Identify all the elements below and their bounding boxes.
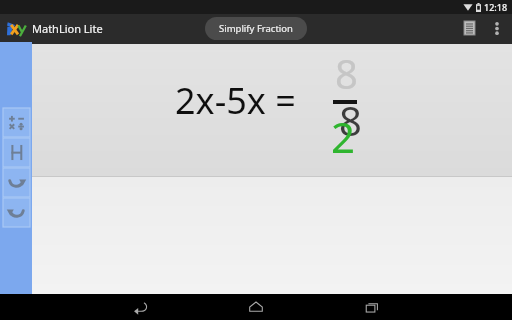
staticText: 2x-5x =	[175, 76, 296, 125]
button[interactable]: MathLion Lite	[7, 20, 103, 36]
button[interactable]: History	[454, 14, 484, 42]
staticText: Simplify Fraction	[219, 22, 293, 35]
button[interactable]: 8	[32, 44, 512, 176]
button[interactable]: Simplify Fraction	[205, 17, 307, 40]
staticText: 2	[331, 108, 356, 165]
button[interactable]: Back	[120, 294, 160, 320]
staticText: 8	[339, 93, 362, 147]
button[interactable]: Redo	[3, 168, 30, 197]
button[interactable]: More options	[484, 14, 510, 42]
staticText: 12:18	[484, 1, 508, 13]
button[interactable]: Highlight	[3, 138, 30, 167]
button[interactable]: Operators	[3, 108, 30, 137]
button[interactable]: Undo	[3, 198, 30, 227]
staticText: 8	[335, 46, 358, 100]
button[interactable]: Recent apps	[352, 294, 392, 320]
button[interactable]: Home	[236, 294, 276, 320]
staticText: MathLion Lite	[32, 21, 103, 36]
